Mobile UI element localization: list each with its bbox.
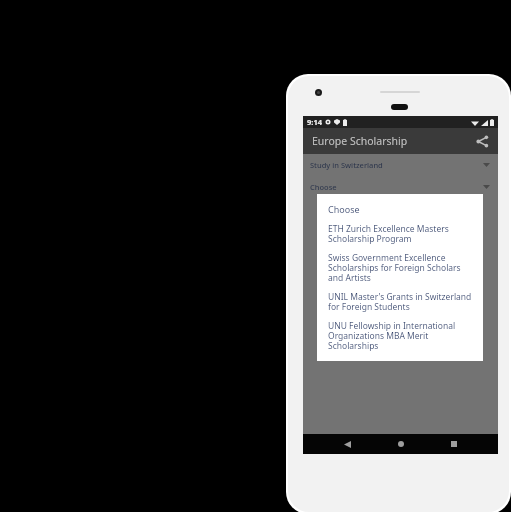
button[interactable]: Share bbox=[472, 131, 492, 151]
button[interactable]: Back bbox=[337, 434, 357, 454]
button[interactable]: Swiss Government Excellence Scholarships… bbox=[328, 252, 472, 284]
button[interactable]: Home bbox=[391, 434, 411, 454]
button[interactable]: UNIL Master's Grants in Switzerland for … bbox=[328, 291, 472, 313]
staticText: UNU Fellowship in International Organiza… bbox=[328, 320, 472, 352]
button[interactable]: Recent apps bbox=[444, 434, 464, 454]
staticText: UNIL Master's Grants in Switzerland for … bbox=[328, 291, 472, 313]
staticText: Choose bbox=[328, 203, 360, 215]
staticText: Europe Scholarship bbox=[312, 134, 408, 148]
button[interactable]: Choose bbox=[328, 203, 472, 215]
staticText: Choose bbox=[310, 182, 337, 192]
staticText: ETH Zurich Excellence Masters Scholarshi… bbox=[328, 223, 472, 245]
staticText: Swiss Government Excellence Scholarships… bbox=[328, 252, 472, 284]
button[interactable]: UNU Fellowship in International Organiza… bbox=[328, 320, 472, 352]
button[interactable]: ETH Zurich Excellence Masters Scholarshi… bbox=[328, 223, 472, 245]
staticText: Study in Switzerland bbox=[310, 160, 383, 170]
staticText: 9:14 bbox=[307, 117, 322, 127]
button[interactable]: Choose bbox=[303, 176, 498, 198]
button[interactable]: Study in Switzerland bbox=[303, 154, 498, 176]
